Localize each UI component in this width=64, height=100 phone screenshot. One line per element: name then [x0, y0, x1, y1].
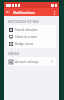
button[interactable]: Account settings	[7, 58, 56, 65]
button[interactable]: Badge count	[7, 40, 56, 47]
staticText: Account settings	[15, 60, 39, 64]
staticText: Notifications	[13, 10, 35, 15]
button[interactable]: Sound vibration	[7, 26, 56, 33]
staticText: Badge count	[15, 42, 33, 46]
staticText: NOTIFICATION SETTINGS	[8, 20, 39, 24]
staticText: GENERAL	[8, 52, 20, 56]
button[interactable]: Navigate up	[4, 8, 12, 16]
button[interactable]: More options	[51, 9, 58, 16]
staticText: Sound vibration	[15, 28, 38, 32]
staticText: Show on screen	[15, 35, 38, 39]
button[interactable]: Show on screen	[7, 33, 56, 40]
